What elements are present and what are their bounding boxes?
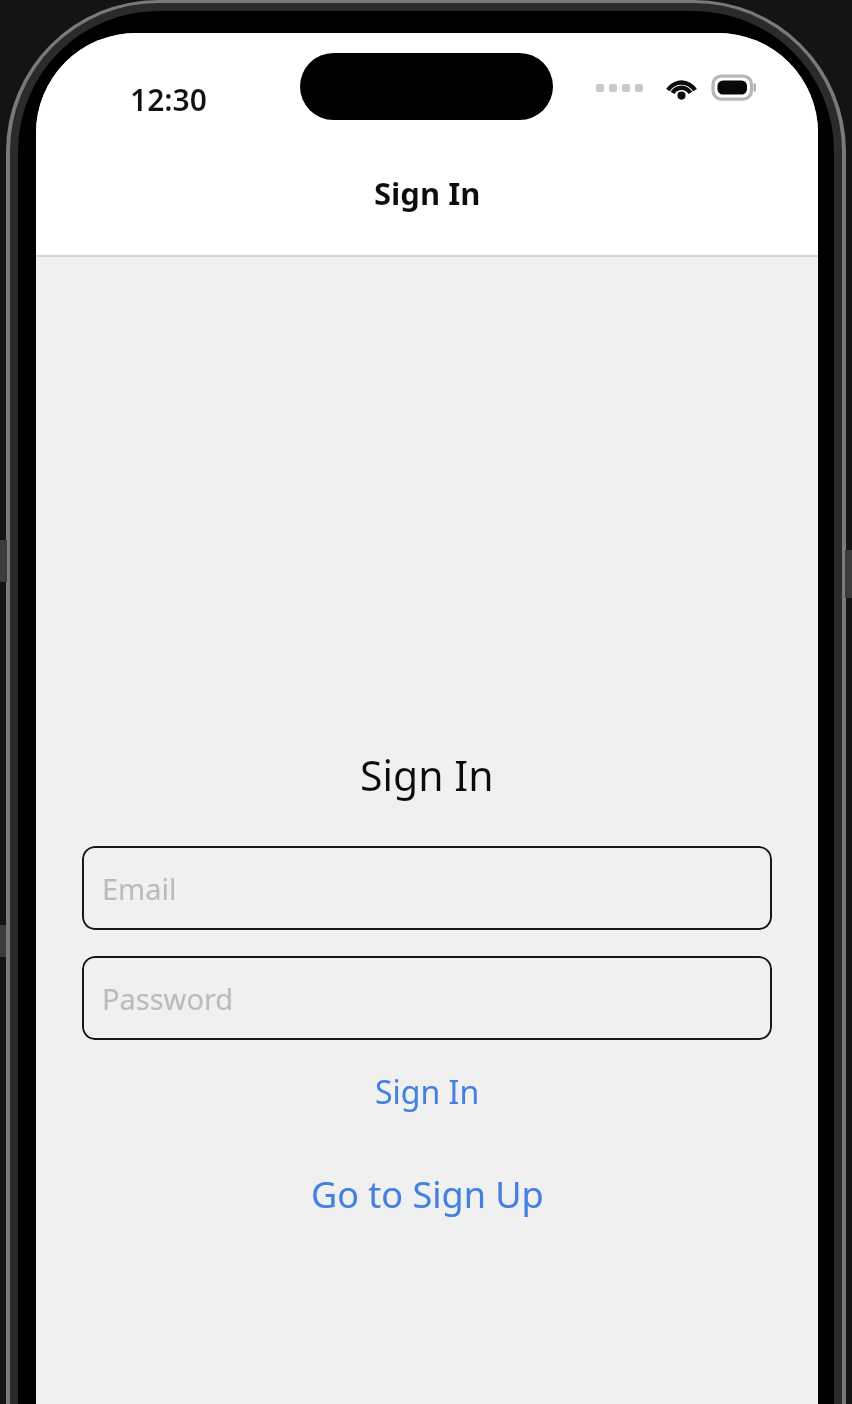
staticText: 12:30 (130, 79, 207, 120)
other: Wi-Fi (664, 74, 699, 101)
staticText: Sign In (375, 1070, 480, 1114)
staticText: Sign In (360, 747, 494, 803)
button[interactable]: Go to Sign Up (36, 1164, 818, 1224)
staticText: Email (102, 869, 177, 908)
button[interactable]: Email (82, 846, 772, 930)
other: Battery (712, 75, 757, 100)
staticText: Sign In (374, 172, 481, 214)
button[interactable]: Password (82, 956, 772, 1040)
staticText: Password (102, 979, 234, 1018)
staticText: Go to Sign Up (311, 1170, 544, 1219)
button[interactable]: Sign In (36, 1062, 818, 1122)
